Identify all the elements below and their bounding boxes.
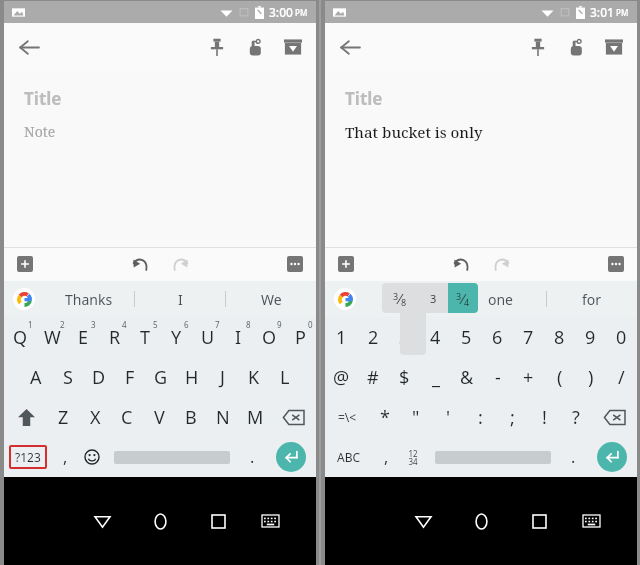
button[interactable]: A [20, 357, 52, 397]
button[interactable]: 3 [418, 283, 448, 313]
button[interactable]: $ [389, 357, 420, 397]
button[interactable]: N [207, 397, 239, 437]
button[interactable]: & [451, 357, 482, 397]
button[interactable]: Keyboard [568, 477, 614, 565]
button[interactable]: Google [4, 281, 44, 317]
button[interactable]: B [175, 397, 207, 437]
button[interactable]: # [357, 357, 389, 397]
button[interactable]: Delete [271, 397, 316, 437]
button[interactable]: ? [560, 397, 592, 437]
button[interactable]: 2 [357, 317, 389, 357]
button[interactable]: Q [4, 317, 36, 357]
button[interactable]: Recents [510, 477, 568, 565]
button[interactable]: S [52, 357, 83, 397]
button[interactable]: R [99, 317, 130, 357]
button[interactable]: More options [603, 251, 629, 277]
button[interactable]: 7 [513, 317, 544, 357]
button[interactable]: 3 [389, 317, 420, 357]
button[interactable]: , [52, 437, 78, 477]
button[interactable]: , [373, 437, 399, 477]
button[interactable]: T [130, 317, 161, 357]
button[interactable]: We [226, 281, 316, 317]
button[interactable]: C [111, 397, 143, 437]
button[interactable]: Home [452, 477, 510, 565]
button[interactable]: U [192, 317, 223, 357]
button[interactable]: Pin [198, 28, 236, 66]
button[interactable]: O [254, 317, 285, 357]
button[interactable]: Back [73, 477, 131, 565]
button[interactable]: Space [427, 437, 559, 477]
button[interactable]: M [239, 397, 271, 437]
button[interactable]: . [559, 437, 587, 477]
button[interactable]: + [513, 357, 544, 397]
button[interactable]: Y [161, 317, 192, 357]
button[interactable]: 6 [482, 317, 513, 357]
button[interactable]: L [269, 357, 300, 397]
button[interactable]: Google [325, 281, 365, 317]
button[interactable]: Enter [266, 437, 316, 477]
button[interactable]: " [400, 397, 432, 437]
button[interactable]: Archive [595, 28, 633, 66]
button[interactable]: * [369, 397, 400, 437]
button[interactable]: . [238, 437, 266, 477]
button[interactable]: : [464, 397, 496, 437]
button[interactable]: =\< [325, 397, 369, 437]
button[interactable] [365, 281, 455, 317]
button[interactable]: W [36, 317, 68, 357]
button[interactable]: Redo [165, 249, 195, 279]
button[interactable]: Thanks [44, 281, 134, 317]
button[interactable]: ) [575, 357, 606, 397]
button[interactable]: F [114, 357, 145, 397]
button[interactable]: Recents [189, 477, 247, 565]
button[interactable]: _ [420, 357, 451, 397]
button[interactable]: X [79, 397, 111, 437]
button[interactable]: Pin [519, 28, 557, 66]
button[interactable]: Delete [592, 397, 637, 437]
button[interactable]: Back [331, 28, 369, 66]
button[interactable]: K [238, 357, 269, 397]
button[interactable]: Back [394, 477, 452, 565]
button[interactable]: H [176, 357, 207, 397]
button[interactable]: Keyboard [247, 477, 293, 565]
button[interactable]: I [223, 317, 254, 357]
button[interactable]: Reminder [557, 28, 595, 66]
button[interactable]: Undo [125, 249, 155, 279]
button[interactable]: Undo [446, 249, 476, 279]
button[interactable]: E [68, 317, 99, 357]
button[interactable]: I [135, 281, 225, 317]
button[interactable]: D [83, 357, 114, 397]
button[interactable]: Add [333, 251, 359, 277]
button[interactable]: V [143, 397, 175, 437]
button[interactable]: Redo [486, 249, 516, 279]
button[interactable]: Archive [274, 28, 312, 66]
button[interactable]: / [606, 357, 637, 397]
button[interactable]: Space [106, 437, 238, 477]
button[interactable]: Add [12, 251, 38, 277]
button[interactable]: Emoji [78, 437, 106, 477]
button[interactable]: 3 [448, 283, 478, 313]
button[interactable]: 4 [420, 317, 451, 357]
button[interactable]: 3 [382, 283, 418, 313]
button[interactable]: 5 [451, 317, 482, 357]
button[interactable]: ' [432, 397, 464, 437]
button[interactable]: ( [544, 357, 575, 397]
button[interactable]: ?123 [4, 437, 52, 477]
button[interactable]: Z [48, 397, 79, 437]
button[interactable]: 1 [325, 317, 357, 357]
button[interactable]: ! [528, 397, 560, 437]
button[interactable]: - [482, 357, 513, 397]
button[interactable]: Reminder [236, 28, 274, 66]
button[interactable]: @ [325, 357, 357, 397]
button[interactable]: Shift [4, 397, 48, 437]
button[interactable]: More options [282, 251, 308, 277]
button[interactable]: Enter [587, 437, 637, 477]
button[interactable]: 9 [575, 317, 606, 357]
button[interactable]: Numbers [399, 437, 427, 477]
button[interactable]: Back [10, 28, 48, 66]
button[interactable]: Home [131, 477, 189, 565]
button[interactable]: ; [496, 397, 528, 437]
button[interactable]: 8 [544, 317, 575, 357]
button[interactable]: J [207, 357, 238, 397]
button[interactable]: ABC [325, 437, 373, 477]
button[interactable]: P [285, 317, 316, 357]
